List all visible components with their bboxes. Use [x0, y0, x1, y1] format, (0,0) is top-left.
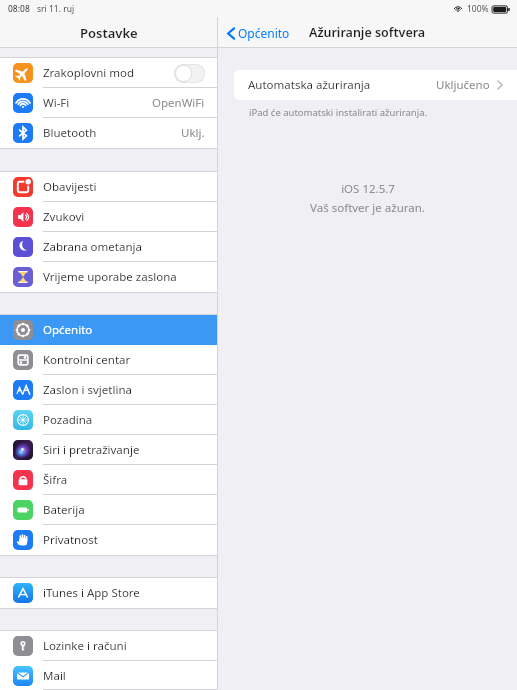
button[interactable]: Automatska ažuriranja — [234, 70, 517, 100]
staticText: Lozinke i računi — [43, 638, 205, 654]
staticText: Vaš softver je ažuran. — [310, 200, 425, 216]
staticText: Siri i pretraživanje — [43, 442, 205, 458]
staticText: Uključeno — [436, 77, 490, 93]
staticText: OpenWiFi — [152, 95, 205, 111]
button[interactable]: Zvukovi — [0, 202, 217, 232]
staticText: 08:08 — [8, 3, 30, 15]
button[interactable]: iTunes i App Store — [0, 578, 217, 608]
button[interactable]: Mail — [0, 661, 217, 690]
staticText: Šifra — [43, 472, 205, 488]
button[interactable]: Obavijesti — [0, 172, 217, 202]
staticText: Mail — [43, 668, 205, 684]
button[interactable]: Siri i pretraživanje — [0, 435, 217, 465]
button[interactable]: Zrakoplovni mod — [0, 58, 217, 88]
button[interactable]: Kontrolni centar — [0, 345, 217, 375]
button[interactable]: Općenito — [0, 315, 217, 345]
staticText: Zaslon i svjetlina — [43, 382, 205, 398]
button[interactable]: Baterija — [0, 495, 217, 525]
staticText: Bluetooth — [43, 125, 181, 141]
button[interactable]: Wi-Fi — [0, 88, 217, 118]
staticText: Kontrolni centar — [43, 352, 205, 368]
staticText: sri 11. ruj — [37, 3, 75, 15]
staticText: Ažuriranje softvera — [309, 24, 426, 41]
button[interactable]: Lozinke i računi — [0, 631, 217, 661]
staticText: Vrijeme uporabe zaslona — [43, 269, 205, 285]
staticText: Općenito — [238, 25, 290, 41]
staticText: Automatska ažuriranja — [248, 77, 436, 93]
button[interactable]: Općenito — [227, 25, 290, 41]
staticText: Zvukovi — [43, 209, 205, 225]
button[interactable]: Zabrana ometanja — [0, 232, 217, 262]
staticText: Obavijesti — [43, 179, 205, 195]
button[interactable]: Zaslon i svjetlina — [0, 375, 217, 405]
staticText: Zrakoplovni mod — [43, 65, 174, 81]
staticText: Postavke — [80, 24, 138, 42]
staticText: Uklj. — [181, 125, 205, 141]
staticText: iOS 12.5.7 — [341, 181, 395, 197]
button[interactable]: Šifra — [0, 465, 217, 495]
staticText: Općenito — [43, 322, 205, 338]
button[interactable]: Privatnost — [0, 525, 217, 555]
staticText: Zabrana ometanja — [43, 239, 205, 255]
staticText: Wi-Fi — [43, 95, 152, 111]
staticText: Baterija — [43, 502, 205, 518]
button[interactable]: Vrijeme uporabe zaslona — [0, 262, 217, 292]
staticText: 100% — [467, 3, 489, 15]
staticText: Pozadina — [43, 412, 205, 428]
staticText: iTunes i App Store — [43, 585, 205, 601]
button[interactable]: Bluetooth — [0, 118, 217, 148]
staticText: iPad će automatski instalirati ažuriranj… — [249, 106, 428, 119]
staticText: Privatnost — [43, 532, 205, 548]
button[interactable]: Airplane mode toggle — [174, 64, 205, 83]
button[interactable]: Pozadina — [0, 405, 217, 435]
